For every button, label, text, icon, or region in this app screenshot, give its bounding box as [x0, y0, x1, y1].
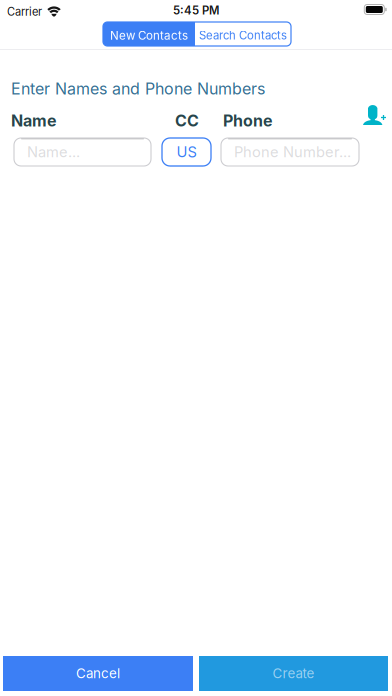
staticText: US [176, 143, 196, 161]
staticText: 5:45 PM [173, 3, 219, 17]
staticText: Search Contacts [199, 29, 287, 42]
button[interactable]: US [162, 138, 211, 166]
staticText: CC [175, 111, 199, 130]
button[interactable]: Add contact [360, 102, 390, 128]
staticText: New Contacts [110, 28, 188, 42]
button[interactable]: Create [199, 656, 388, 691]
button[interactable]: New Contacts [103, 22, 195, 46]
staticText: Phone Number... [234, 143, 351, 161]
staticText: Carrier [7, 5, 42, 18]
staticText: Enter Names and Phone Numbers [11, 79, 265, 98]
staticText: Name... [27, 143, 80, 161]
staticText: Phone [223, 111, 273, 130]
staticText: Name [11, 111, 57, 130]
button[interactable]: Search Contacts [195, 22, 291, 46]
staticText: Cancel [76, 665, 120, 681]
staticText: Create [272, 665, 314, 681]
button[interactable]: Cancel [3, 656, 193, 691]
